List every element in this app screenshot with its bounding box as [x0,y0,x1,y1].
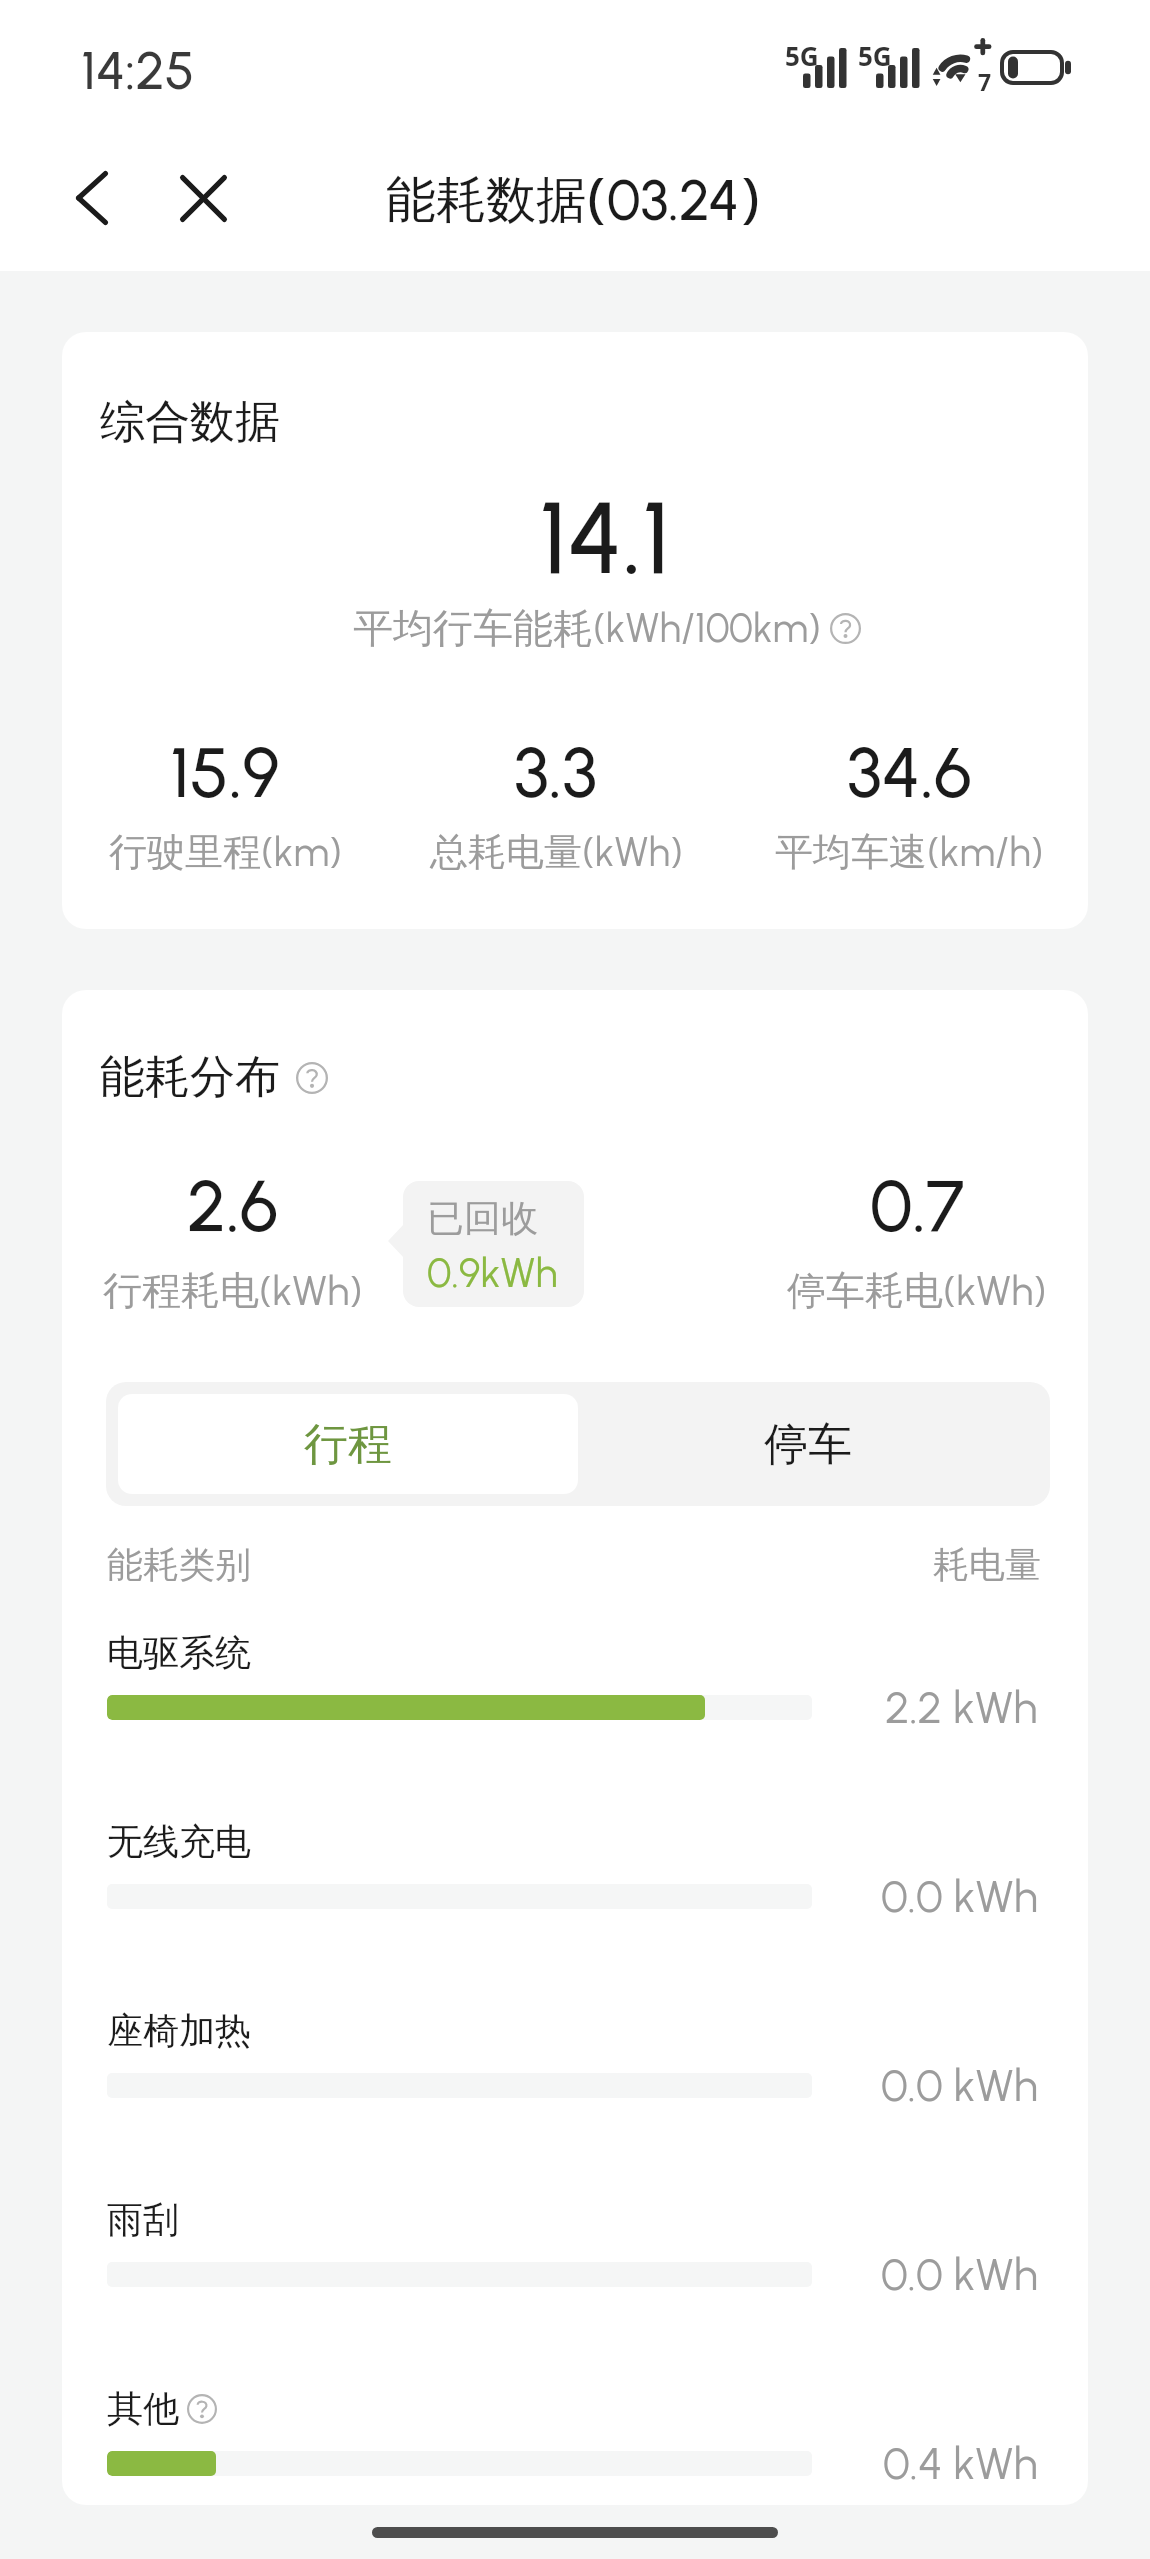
staticText: 2.2 kWh [885,1680,1038,1734]
staticText: 14.1 [539,478,671,598]
staticText: 停车 [764,1417,852,1472]
staticText: 7 [978,66,992,97]
staticText: 5G [785,38,819,73]
staticText: 能耗类别 [107,1542,251,1587]
staticText: 平均行车能耗 [353,603,593,653]
staticText: 综合数据 [100,394,280,451]
staticText: 2.6 [187,1164,279,1249]
staticText: 3.3 [514,730,598,814]
button[interactable]: Close [158,153,248,243]
staticText: 无线充电 [107,1819,251,1864]
staticText: (km/h) [927,828,1044,876]
staticText: (km) [261,828,342,876]
staticText: 15.9 [170,730,280,814]
staticText: 行程耗电 [103,1266,259,1315]
button[interactable]: Back [47,153,137,243]
button[interactable]: 能耗分布 help [100,1049,328,1106]
staticText: (kWh) [943,1266,1047,1315]
staticText: 其他 [107,2386,179,2431]
staticText: 已回收 [427,1195,538,1242]
staticText: 0.0 kWh [881,2058,1038,2112]
staticText: 能耗数据 [386,169,586,232]
staticText: 电驱系统 [107,1630,251,1675]
staticText: 雨刮 [107,2197,179,2242]
staticText: 0.9kWh [427,1248,558,1297]
staticText: 14:25 [81,39,195,103]
staticText: ( [586,163,607,237]
staticText: (kWh) [582,828,683,876]
button[interactable]: 行程 [118,1394,578,1494]
staticText: 总耗电量 [430,828,582,876]
staticText: 0.0 kWh [881,1869,1038,1923]
staticText: 座椅加热 [107,2008,251,2053]
staticText: 0.4 kWh [883,2436,1038,2490]
staticText: 03.24 [607,167,740,234]
staticText: 0.7 [870,1164,965,1249]
button[interactable]: 停车 [578,1394,1038,1494]
staticText: 停车耗电 [787,1266,943,1315]
staticText: 34.6 [847,730,972,814]
staticText: 0.0 kWh [881,2247,1038,2301]
button[interactable]: 其他 [107,2386,217,2431]
staticText: 耗电量 [933,1542,1041,1587]
staticText: 行驶里程 [109,828,261,876]
staticText: 行程 [304,1417,392,1472]
staticText: ) [740,163,761,237]
staticText: 能耗分布 [100,1049,280,1106]
staticText: (kWh) [259,1266,363,1315]
staticText: (kWh/100km) [593,604,821,652]
staticText: 5G [858,38,892,73]
staticText: 平均车速 [775,828,927,876]
button[interactable]: 平均行车能耗说明 [353,603,861,653]
